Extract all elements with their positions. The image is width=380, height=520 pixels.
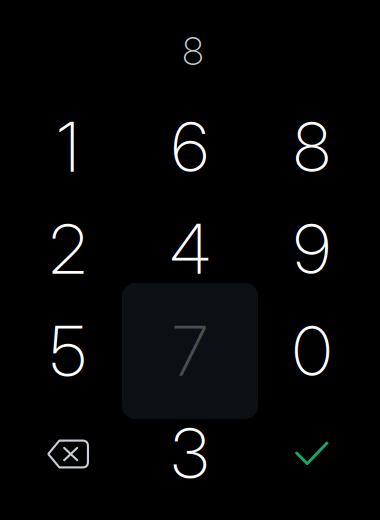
button[interactable]: 8	[251, 96, 373, 198]
button[interactable]: Delete	[7, 402, 129, 504]
staticText: 8	[293, 106, 330, 188]
button[interactable]: 0	[251, 300, 373, 402]
staticText: 4	[170, 208, 210, 290]
button[interactable]: 5	[7, 300, 129, 402]
staticText: 8	[182, 28, 203, 74]
staticText: 6	[171, 106, 208, 188]
staticText: 3	[171, 412, 209, 494]
button[interactable]: 3	[129, 402, 251, 504]
staticText: 2	[49, 208, 86, 290]
button[interactable]: 6	[129, 96, 251, 198]
button[interactable]: 2	[7, 198, 129, 300]
button[interactable]: 4	[129, 198, 251, 300]
staticText: 0	[292, 310, 331, 392]
button[interactable]: Confirm	[251, 402, 373, 504]
button[interactable]: 7	[129, 300, 251, 402]
button[interactable]: 9	[251, 198, 373, 300]
staticText: 5	[50, 310, 86, 392]
staticText: 7	[172, 310, 207, 392]
button[interactable]: 1	[7, 96, 129, 198]
staticText: 1	[57, 106, 79, 188]
staticText: 9	[293, 208, 330, 290]
